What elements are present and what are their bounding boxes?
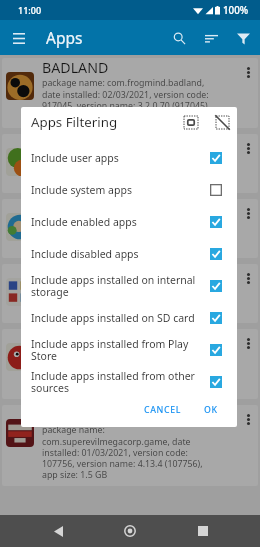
staticText: OK xyxy=(204,404,218,416)
button[interactable]: Search xyxy=(163,21,195,55)
staticText: Include user apps xyxy=(31,151,210,165)
staticText: Clash Royale xyxy=(42,264,126,283)
button[interactable]: Include apps installed from other source… xyxy=(21,366,237,398)
staticText: 100% xyxy=(223,4,249,17)
button[interactable]: Sort xyxy=(195,21,227,55)
button[interactable]: Bubble Witch xyxy=(2,199,258,258)
staticText: 100% xyxy=(223,4,249,17)
staticText: Include apps installed on SD card xyxy=(31,311,210,325)
button[interactable]: Include user apps xyxy=(21,142,237,174)
button[interactable]: Angry Birds xyxy=(2,329,258,399)
button[interactable]: BADLAND xyxy=(2,58,258,128)
staticText: Include enabled apps xyxy=(31,215,210,229)
staticText: package name: com.frogmind.badland, date… xyxy=(42,77,210,123)
staticText: Apps xyxy=(46,27,83,48)
button[interactable]: Vainglory xyxy=(2,405,258,486)
button[interactable]: Include system apps xyxy=(21,174,237,206)
staticText: CANCEL xyxy=(144,404,181,416)
staticText: Include disabled apps xyxy=(31,247,210,261)
staticText: package name: com.supercell.clash, date … xyxy=(42,283,191,318)
button[interactable]: Select all xyxy=(180,111,202,133)
button[interactable]: Filter xyxy=(227,21,259,55)
button[interactable]: Deselect all xyxy=(211,111,233,133)
staticText: Include system apps xyxy=(31,183,210,197)
button[interactable]: Include enabled apps xyxy=(21,206,237,238)
staticText: Apps xyxy=(46,27,83,48)
button[interactable]: Bad Piggies xyxy=(2,134,258,193)
staticText: Apps Filtering xyxy=(31,113,118,131)
button[interactable]: Sort xyxy=(195,21,227,55)
button[interactable]: Home xyxy=(115,516,145,546)
staticText: package name: com.rovio.badpiggies, date… xyxy=(42,153,199,188)
button[interactable]: Include apps installed on internal stora… xyxy=(21,270,237,302)
button[interactable]: OK xyxy=(198,400,224,420)
button[interactable]: Filter xyxy=(227,21,259,55)
staticText: Include apps installed from Play Store xyxy=(31,337,210,363)
staticText: package name: com.superevilmegacorp.game… xyxy=(42,424,203,481)
staticText: 11:00 xyxy=(18,4,42,16)
staticText: Include apps installed on internal stora… xyxy=(31,273,210,299)
button[interactable]: Include disabled apps xyxy=(21,238,237,270)
button[interactable]: CANCEL xyxy=(138,400,187,420)
button[interactable]: Clash Royale xyxy=(2,264,258,323)
button[interactable]: Search xyxy=(163,21,195,55)
staticText: package name: com.rovio.angrybirds, date… xyxy=(42,348,198,394)
button[interactable]: Include apps installed on SD card xyxy=(21,302,237,334)
staticText: 11:00 xyxy=(18,4,42,16)
button[interactable]: Recents xyxy=(188,516,218,546)
button[interactable]: Back xyxy=(43,516,73,546)
button[interactable]: Include apps installed from Play Store xyxy=(21,334,237,366)
staticText: BADLAND xyxy=(42,58,109,77)
button[interactable]: Navigation menu xyxy=(6,25,32,51)
staticText: Include apps installed from other source… xyxy=(31,369,210,395)
staticText: Angry Birds xyxy=(42,329,120,348)
button[interactable]: Navigation menu xyxy=(6,25,32,51)
staticText: package name: com.king.bubblewitch, date… xyxy=(42,218,201,253)
